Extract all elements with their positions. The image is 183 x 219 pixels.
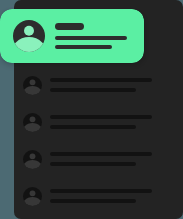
button[interactable]: Contact row <box>14 141 183 178</box>
button[interactable]: Contact row <box>14 104 183 141</box>
button[interactable]: Contact row <box>14 67 183 104</box>
button[interactable]: Contact row <box>14 178 183 215</box>
button[interactable]: Your profile <box>0 9 144 63</box>
